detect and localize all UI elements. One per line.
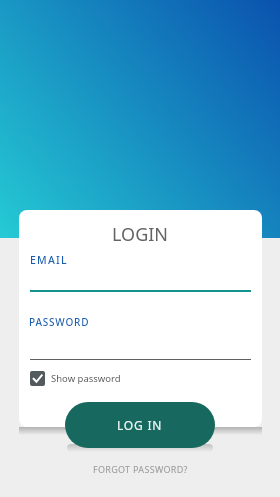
button[interactable]: Show password bbox=[30, 371, 121, 386]
staticText: Show password bbox=[51, 372, 121, 385]
staticText: LOGIN bbox=[112, 222, 169, 247]
staticText: EMAIL bbox=[30, 253, 68, 267]
button[interactable]: FORGOT PASSWORD? bbox=[93, 463, 188, 475]
button[interactable]: LOG IN bbox=[65, 402, 215, 448]
staticText: PASSWORD bbox=[29, 315, 90, 329]
staticText: LOG IN bbox=[117, 417, 163, 433]
